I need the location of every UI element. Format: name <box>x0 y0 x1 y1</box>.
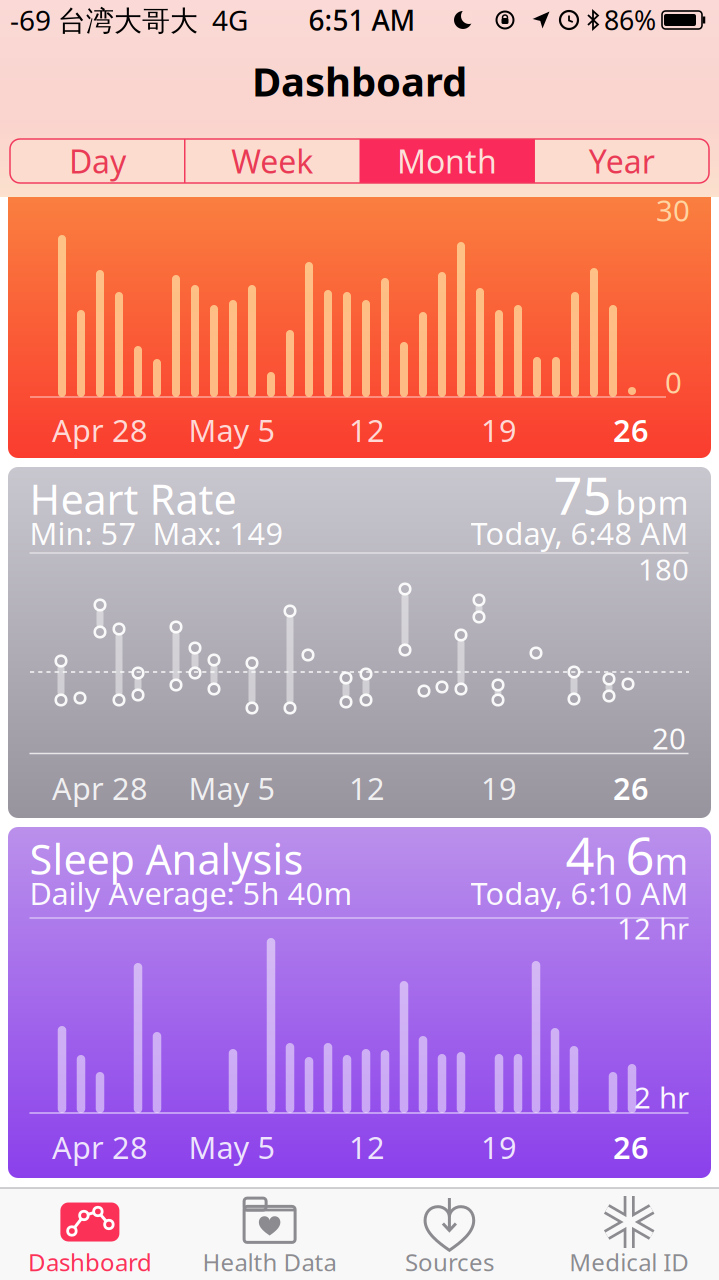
staticText: 180 <box>638 549 689 588</box>
staticText: 19 <box>481 1127 517 1167</box>
staticText: Apr 28 <box>52 410 148 450</box>
staticText: 30 <box>656 190 690 229</box>
staticText: Medical ID <box>569 1246 689 1278</box>
staticText: Dashboard <box>252 54 467 107</box>
staticText: 12 <box>349 410 385 450</box>
staticText: Day <box>69 140 126 182</box>
staticText: h <box>594 837 625 885</box>
button[interactable]: Day <box>14 139 181 183</box>
staticText: May 5 <box>188 410 275 450</box>
staticText: 6:51 AM <box>308 1 415 39</box>
staticText: 86% <box>604 2 656 38</box>
button[interactable]: Sources <box>364 1189 534 1279</box>
staticText: 0 <box>665 362 682 401</box>
staticText: May 5 <box>188 768 275 808</box>
staticText: Daily Average: 5h 40m <box>29 873 352 913</box>
button[interactable]: Dashboard <box>5 1189 175 1279</box>
staticText: Month <box>397 140 497 182</box>
staticText: 75 <box>553 461 611 529</box>
staticText: Sources <box>405 1246 494 1278</box>
button[interactable]: Heart Rate <box>8 467 711 818</box>
staticText: 12 <box>349 768 385 808</box>
staticText: Week <box>231 140 313 182</box>
staticText: -69 台湾大哥大 4G <box>10 1 248 39</box>
staticText: 12 <box>349 1127 385 1167</box>
staticText: Sleep Analysis <box>29 831 303 886</box>
staticText: 19 <box>481 768 517 808</box>
staticText: 4 <box>565 821 594 889</box>
staticText: Today, 6:10 AM <box>470 873 688 913</box>
button[interactable]: Week <box>189 139 356 183</box>
staticText: 6 <box>625 821 654 889</box>
button[interactable]: Month <box>363 139 530 183</box>
staticText: Min: 57 Max: 149 <box>29 513 283 553</box>
button[interactable]: Medical ID <box>544 1189 714 1279</box>
button[interactable]: 30 <box>8 185 711 458</box>
staticText: 2 hr <box>634 1077 689 1116</box>
staticText: 26 <box>613 768 649 808</box>
staticText: Dashboard <box>28 1246 152 1278</box>
staticText: Today, 6:48 AM <box>470 513 688 553</box>
staticText: 26 <box>613 1127 649 1167</box>
staticText: m <box>654 837 688 885</box>
staticText: Apr 28 <box>52 768 148 808</box>
staticText: Year <box>589 140 655 182</box>
staticText: 26 <box>613 410 649 450</box>
staticText: bpm <box>615 480 688 524</box>
button[interactable]: Health Data <box>185 1189 355 1279</box>
staticText: 20 <box>652 718 686 757</box>
staticText: Apr 28 <box>52 1127 148 1167</box>
staticText: May 5 <box>188 1127 275 1167</box>
staticText: 19 <box>481 410 517 450</box>
staticText: Heart Rate <box>29 471 236 526</box>
button[interactable]: Year <box>538 139 705 183</box>
button[interactable]: Sleep Analysis <box>8 827 711 1178</box>
staticText: 12 hr <box>617 908 689 947</box>
staticText: Health Data <box>203 1246 337 1278</box>
